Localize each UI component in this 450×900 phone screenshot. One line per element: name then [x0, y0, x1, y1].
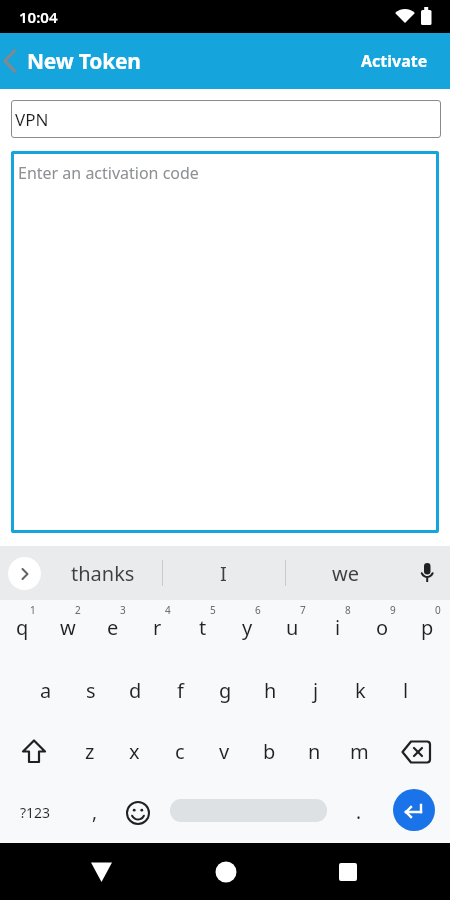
button[interactable]: j [293, 660, 338, 721]
staticText: j [313, 677, 319, 704]
staticText: 2 [75, 603, 81, 617]
button[interactable]: a [23, 660, 68, 721]
staticText: ?123 [20, 803, 51, 822]
staticText: 10:04 [19, 7, 58, 27]
staticText: 3 [120, 603, 126, 617]
staticText: I [220, 560, 227, 587]
staticText: , [92, 799, 98, 825]
staticText: Enter an activation code [18, 162, 199, 184]
staticText: f [177, 677, 184, 704]
button[interactable]: g [203, 660, 248, 721]
staticText: w [60, 614, 76, 641]
staticText: a [40, 677, 52, 704]
button[interactable]: VPN [11, 100, 441, 138]
staticText: VPN [15, 108, 49, 131]
staticText: we [332, 560, 359, 587]
staticText: 8 [345, 603, 351, 617]
staticText: 9 [390, 603, 396, 617]
button[interactable]: ?123 [0, 782, 70, 843]
staticText: g [219, 677, 232, 704]
staticText: 1 [30, 603, 36, 617]
staticText: r [153, 614, 162, 641]
button[interactable]: x [112, 721, 157, 782]
button[interactable]: w [45, 600, 90, 660]
button[interactable]: l [383, 660, 428, 721]
staticText: v [219, 738, 230, 765]
staticText: z [85, 738, 95, 765]
staticText: 4 [165, 603, 171, 617]
button[interactable]: c [157, 721, 202, 782]
button[interactable]: o [360, 600, 405, 660]
staticText: 7 [300, 603, 306, 617]
button[interactable]: m [337, 721, 382, 782]
button[interactable]: h [248, 660, 293, 721]
staticText: l [403, 677, 409, 704]
staticText: k [355, 677, 366, 704]
button[interactable] [339, 863, 357, 881]
staticText: h [264, 677, 277, 704]
staticText: c [175, 738, 185, 765]
staticText: m [350, 738, 369, 765]
staticText: thanks [71, 560, 135, 587]
staticText: 6 [255, 603, 261, 617]
button[interactable]: s [68, 660, 113, 721]
staticText: New Token [27, 47, 141, 76]
button[interactable]: Activate [345, 33, 450, 89]
button[interactable]: Enter an activation code [11, 151, 439, 533]
button[interactable]: I [163, 546, 283, 600]
button[interactable] [8, 557, 41, 590]
button[interactable] [0, 721, 67, 782]
staticText: e [107, 614, 119, 641]
button[interactable]: p [405, 600, 450, 660]
staticText: y [242, 614, 253, 641]
button[interactable] [115, 782, 160, 843]
staticText: u [286, 614, 299, 641]
staticText: b [263, 738, 276, 765]
button[interactable] [215, 861, 237, 883]
staticText: o [376, 614, 389, 641]
button[interactable]: r [135, 600, 180, 660]
staticText: n [308, 738, 321, 765]
button[interactable]: , [72, 782, 117, 843]
button[interactable]: b [247, 721, 292, 782]
staticText: 5 [210, 603, 216, 617]
button[interactable]: d [113, 660, 158, 721]
staticText: x [129, 738, 140, 765]
button[interactable]: e [90, 600, 135, 660]
button[interactable] [0, 51, 20, 71]
button[interactable] [382, 721, 450, 782]
button[interactable]: thanks [45, 546, 160, 600]
button[interactable] [417, 563, 437, 583]
button[interactable]: q [0, 600, 45, 660]
staticText: i [335, 614, 341, 641]
button[interactable]: u [270, 600, 315, 660]
staticText: d [129, 677, 142, 704]
button[interactable]: v [202, 721, 247, 782]
button[interactable] [170, 799, 327, 822]
staticText: s [86, 677, 96, 704]
button[interactable]: we [287, 546, 403, 600]
staticText: t [199, 614, 207, 641]
staticText: p [421, 614, 434, 641]
staticText: q [16, 614, 29, 641]
staticText: 0 [435, 603, 441, 617]
button[interactable]: z [67, 721, 112, 782]
button[interactable]: y [225, 600, 270, 660]
button[interactable]: t [180, 600, 225, 660]
staticText: Activate [361, 50, 428, 72]
button[interactable]: n [292, 721, 337, 782]
button[interactable] [91, 862, 112, 882]
button[interactable]: i [315, 600, 360, 660]
button[interactable]: f [158, 660, 203, 721]
staticText: . [356, 799, 362, 825]
button[interactable]: k [338, 660, 383, 721]
button[interactable] [393, 789, 435, 831]
button[interactable]: . [336, 782, 381, 843]
